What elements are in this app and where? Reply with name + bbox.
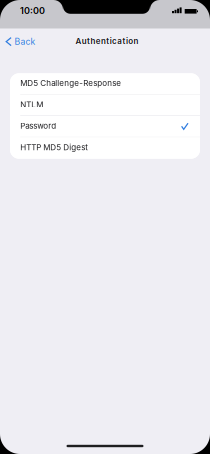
staticText: MD5 Challenge-Response xyxy=(20,78,121,88)
staticText: Authentication xyxy=(75,36,139,46)
staticText: Password xyxy=(20,121,56,131)
staticText: Back xyxy=(14,36,35,47)
button[interactable]: NTLM xyxy=(10,95,200,116)
staticText: HTTP MD5 Digest xyxy=(20,142,88,152)
button[interactable]: Password xyxy=(10,116,200,137)
staticText: NTLM xyxy=(20,100,43,109)
button[interactable]: Back xyxy=(3,34,48,50)
button[interactable]: MD5 Challenge-Response xyxy=(10,73,200,95)
staticText: 10:00 xyxy=(20,5,45,16)
button[interactable]: HTTP MD5 Digest xyxy=(10,137,200,159)
